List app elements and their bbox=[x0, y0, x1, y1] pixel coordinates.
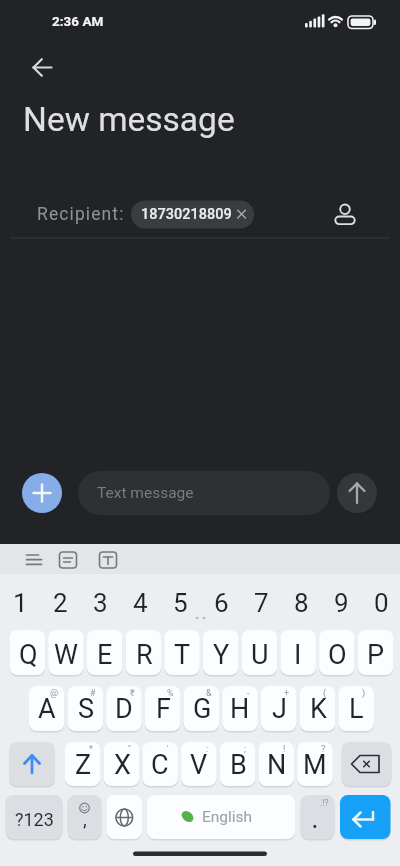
staticText: T bbox=[174, 639, 191, 669]
staticText: 5 bbox=[173, 588, 188, 615]
staticText: 18730218809 bbox=[141, 206, 232, 223]
staticText: 0 bbox=[374, 588, 389, 615]
staticText: X bbox=[114, 749, 131, 779]
staticText: & bbox=[206, 688, 212, 699]
staticText: 1 bbox=[13, 588, 28, 615]
staticText: ! bbox=[283, 744, 286, 755]
staticText: P bbox=[367, 639, 385, 669]
staticText: English bbox=[202, 808, 253, 826]
staticText: . bbox=[312, 809, 318, 832]
staticText: W bbox=[54, 639, 78, 669]
staticText: Z bbox=[75, 749, 92, 779]
staticText: 6 bbox=[214, 588, 229, 615]
staticText: H bbox=[230, 693, 250, 723]
staticText: ) bbox=[362, 688, 366, 699]
staticText: ?123 bbox=[15, 809, 54, 830]
staticText: J bbox=[272, 693, 287, 723]
staticText: R bbox=[136, 639, 153, 669]
staticText: + bbox=[284, 688, 290, 699]
staticText: N bbox=[267, 749, 287, 779]
staticText: New message bbox=[23, 100, 235, 139]
staticText: ₹ bbox=[130, 688, 135, 699]
staticText: ? bbox=[321, 744, 326, 755]
staticText: Y bbox=[213, 639, 230, 669]
staticText: " bbox=[128, 744, 131, 755]
staticText: 7 bbox=[254, 588, 269, 615]
staticText: B bbox=[230, 749, 247, 779]
staticText: 2 bbox=[53, 588, 68, 615]
staticText: F bbox=[156, 693, 171, 723]
staticText: # bbox=[90, 688, 96, 699]
staticText: : bbox=[206, 744, 209, 755]
staticText: Recipient: bbox=[37, 204, 125, 225]
staticText: 2:36 AM bbox=[52, 13, 104, 29]
staticText: ; bbox=[244, 744, 246, 755]
staticText: I bbox=[294, 639, 302, 669]
staticText: - bbox=[247, 688, 250, 699]
staticText: O bbox=[328, 639, 347, 669]
staticText: S bbox=[78, 693, 95, 723]
staticText: 9 bbox=[334, 588, 349, 615]
staticText: Text message bbox=[97, 484, 194, 502]
staticText: 3 bbox=[93, 588, 108, 615]
staticText: Q bbox=[19, 639, 38, 669]
staticText: % bbox=[167, 688, 174, 699]
staticText: L bbox=[349, 693, 364, 723]
staticText: ( bbox=[323, 688, 327, 699]
staticText: K bbox=[310, 693, 327, 723]
staticText: , bbox=[83, 808, 87, 830]
staticText: A bbox=[38, 693, 56, 723]
staticText: * bbox=[89, 744, 93, 755]
staticText: 8 bbox=[294, 588, 309, 615]
staticText: @ bbox=[50, 688, 59, 699]
staticText: V bbox=[190, 749, 208, 779]
staticText: E bbox=[97, 639, 113, 669]
staticText: M bbox=[303, 749, 327, 779]
staticText: U bbox=[251, 639, 269, 669]
staticText: 4 bbox=[133, 588, 148, 615]
staticText: C bbox=[151, 749, 169, 779]
staticText: D bbox=[115, 693, 133, 723]
staticText: ' bbox=[167, 744, 169, 755]
staticText: G bbox=[193, 693, 212, 723]
staticText: .!? bbox=[320, 798, 329, 808]
